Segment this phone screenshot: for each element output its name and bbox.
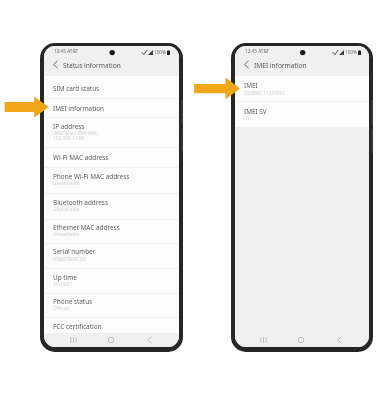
button[interactable] (44, 317, 179, 335)
staticText: Unavailable (53, 206, 80, 213)
button[interactable] (44, 76, 179, 99)
button[interactable]: Navigate up (48, 57, 62, 72)
staticText: 14:23:07 (53, 281, 73, 288)
staticText: Phone status (53, 297, 93, 306)
staticText: Official (53, 305, 69, 312)
button[interactable] (44, 147, 179, 167)
button[interactable] (44, 193, 179, 219)
button[interactable] (44, 117, 179, 147)
button[interactable]: Home (92, 332, 130, 347)
staticText: fe80::84a1:2bff:fe9c (53, 130, 98, 137)
staticText: Unavailable (53, 231, 80, 238)
staticText: IMEI (244, 81, 258, 90)
button[interactable] (235, 76, 369, 101)
staticText: Up time (53, 273, 77, 282)
button[interactable]: Back (130, 332, 168, 347)
staticText: 100% (154, 49, 166, 55)
staticText: IMEI information (254, 61, 307, 70)
button[interactable]: Navigate up (239, 57, 253, 72)
staticText: R58N70ABCDE (53, 256, 86, 263)
staticText: IMEI information (53, 104, 104, 113)
staticText: 03 (244, 115, 250, 122)
button[interactable]: Recents (54, 332, 92, 347)
staticText: IP address (53, 122, 85, 131)
button[interactable]: Home (282, 332, 320, 347)
staticText: Bluetooth address (53, 198, 108, 207)
staticText: 352856111234567 (244, 90, 286, 97)
staticText: 192.168.1.104 (53, 135, 85, 142)
staticText: FCC certification (53, 322, 102, 331)
button[interactable] (44, 243, 179, 268)
button[interactable]: Back (320, 332, 358, 347)
button[interactable] (44, 293, 179, 317)
staticText: Phone Wi-Fi MAC address (53, 172, 130, 181)
staticText: Status information (63, 61, 121, 70)
button[interactable] (44, 219, 179, 244)
staticText: SIM card status (53, 84, 100, 93)
button[interactable] (44, 167, 179, 194)
button[interactable] (44, 268, 179, 293)
staticText: 12:45 AT&T (245, 48, 270, 54)
staticText: 100% (345, 49, 357, 55)
button[interactable] (44, 98, 179, 117)
staticText: Serial number (53, 247, 96, 256)
staticText: Wi-Fi MAC address (53, 153, 109, 162)
button[interactable]: Recents (245, 332, 282, 347)
button[interactable] (235, 101, 369, 125)
staticText: IMEI SV (244, 107, 267, 116)
staticText: Unavailable (53, 180, 80, 187)
staticText: Ethernet MAC address (53, 223, 120, 232)
staticText: 12:45 AT&T (54, 48, 79, 54)
